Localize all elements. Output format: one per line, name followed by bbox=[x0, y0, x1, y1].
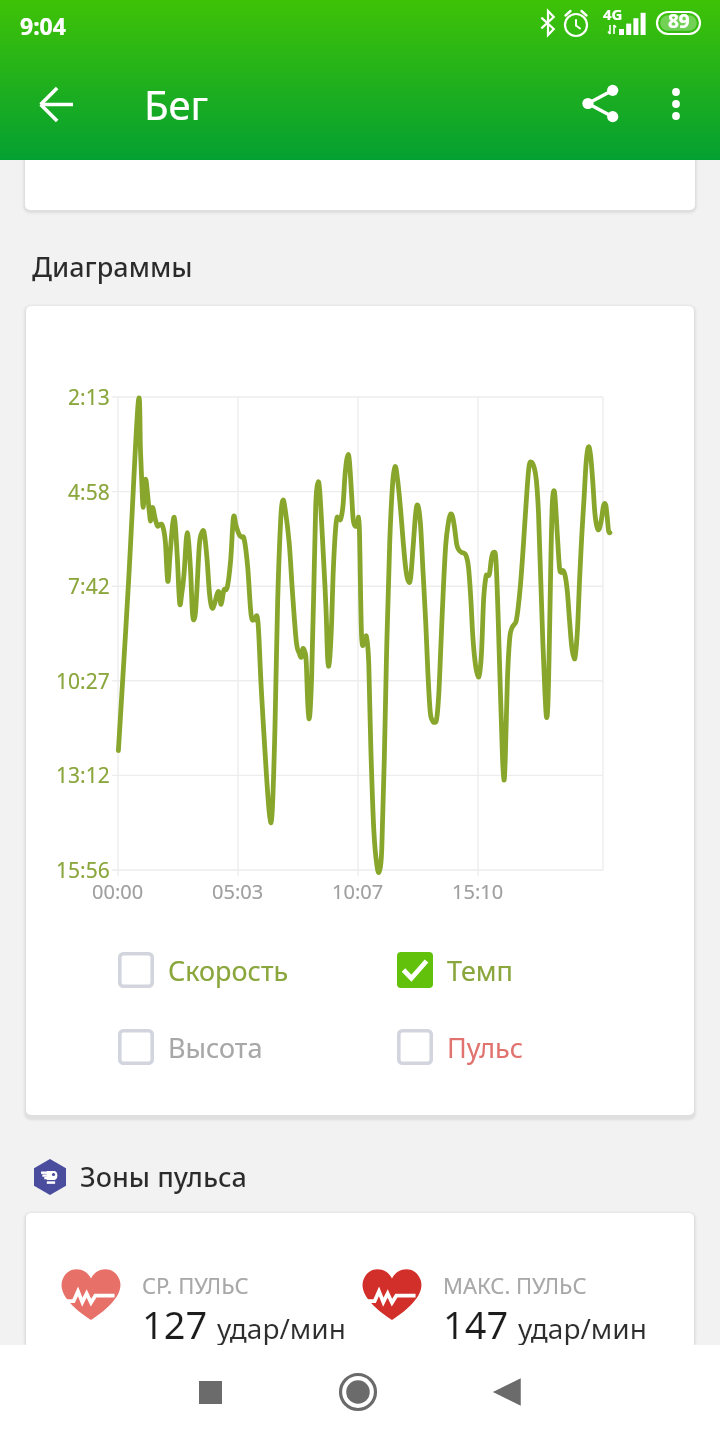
staticText: 7:42 bbox=[68, 572, 110, 601]
staticText: Диаграммы bbox=[32, 248, 193, 285]
staticText: 4:58 bbox=[68, 478, 110, 507]
staticText: 15:10 bbox=[452, 878, 504, 905]
staticText: Зоны пульса bbox=[80, 1158, 247, 1195]
staticText: 147 bbox=[443, 1298, 509, 1345]
staticText: Темп bbox=[447, 952, 513, 989]
staticText: 4G bbox=[603, 4, 623, 24]
staticText: 127 bbox=[142, 1298, 208, 1345]
staticText: Пульс bbox=[447, 1029, 524, 1066]
staticText: 13:12 bbox=[56, 761, 110, 790]
staticText: 10:07 bbox=[332, 878, 384, 905]
staticText: 15:56 bbox=[56, 856, 110, 885]
button[interactable]: Back bbox=[472, 1358, 540, 1426]
staticText: 89 bbox=[668, 8, 690, 34]
button[interactable]: More options bbox=[644, 72, 708, 136]
staticText: МАКС. ПУЛЬС bbox=[443, 1270, 587, 1300]
staticText: 2:13 bbox=[68, 383, 110, 412]
button[interactable]: Высота bbox=[118, 1025, 263, 1069]
staticText: СР. ПУЛЬС bbox=[142, 1270, 249, 1300]
button[interactable]: Home bbox=[324, 1358, 392, 1426]
staticText: Высота bbox=[168, 1029, 263, 1066]
button[interactable]: Share bbox=[568, 71, 632, 135]
button[interactable]: Скорость bbox=[118, 948, 289, 992]
button[interactable]: Темп bbox=[397, 948, 513, 992]
button[interactable]: Пульс bbox=[397, 1025, 524, 1069]
button[interactable]: Back bbox=[24, 72, 88, 136]
staticText: удар/мин bbox=[217, 1309, 346, 1345]
button[interactable]: Recent apps bbox=[176, 1358, 244, 1426]
staticText: 9:04 bbox=[20, 10, 66, 41]
staticText: 05:03 bbox=[212, 878, 264, 905]
staticText: Бег bbox=[144, 77, 209, 131]
staticText: 10:27 bbox=[56, 667, 110, 696]
staticText: удар/мин bbox=[518, 1309, 647, 1345]
staticText: 00:00 bbox=[92, 878, 144, 905]
staticText: Скорость bbox=[168, 952, 289, 989]
